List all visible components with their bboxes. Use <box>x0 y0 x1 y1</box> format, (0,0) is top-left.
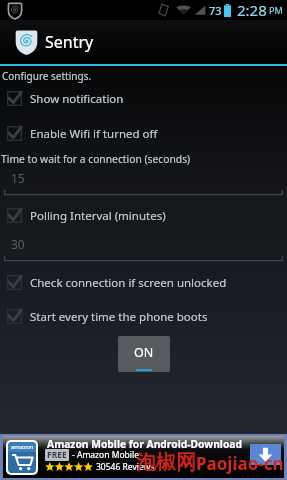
staticText: Show notification <box>30 91 124 107</box>
other: Rotation lock <box>157 3 171 17</box>
staticText: Check connection if screen unlocked <box>30 275 227 291</box>
other: Battery <box>224 4 231 17</box>
staticText: 30 <box>11 236 25 252</box>
staticText: Sentry <box>45 31 94 53</box>
button[interactable]: Show notification <box>0 81 287 116</box>
button[interactable]: 15 <box>0 167 287 197</box>
staticText: 73 <box>209 3 222 18</box>
button[interactable]: ON <box>118 336 170 372</box>
other: Wifi <box>176 4 191 16</box>
staticText: Enable Wifi if turned off <box>30 126 158 142</box>
staticText: 30546 Reviews <box>96 461 155 473</box>
button[interactable]: 30 <box>0 233 287 263</box>
button[interactable]: Download <box>250 444 281 465</box>
staticText: 泡椒网 <box>136 450 196 475</box>
button[interactable]: amazon <box>3 436 284 478</box>
staticText: Polling Interval (minutes) <box>30 208 166 224</box>
button[interactable]: Check connection if screen unlocked <box>0 265 287 300</box>
staticText: Amazon Mobile for Android-Download <box>47 437 243 451</box>
staticText: Time to wait for a connection (seconds) <box>1 152 191 166</box>
staticText: - Amazon Mobile <box>72 449 139 461</box>
staticText: amazon <box>11 443 34 451</box>
button[interactable]: Start every time the phone boots <box>0 299 287 334</box>
staticText: Configure settings. <box>2 69 92 83</box>
staticText: ON <box>134 344 154 361</box>
staticText: Paojiao-cn <box>196 452 284 475</box>
button[interactable]: Polling Interval (minutes) <box>0 198 287 233</box>
staticText: Start every time the phone boots <box>30 309 208 325</box>
button[interactable]: Enable Wifi if turned off <box>0 116 287 151</box>
staticText: FREE <box>47 449 67 461</box>
staticText: 2:28 <box>237 0 267 20</box>
staticText: PM <box>269 4 283 16</box>
other: Signal strength <box>194 5 206 16</box>
staticText: 15 <box>11 170 25 186</box>
